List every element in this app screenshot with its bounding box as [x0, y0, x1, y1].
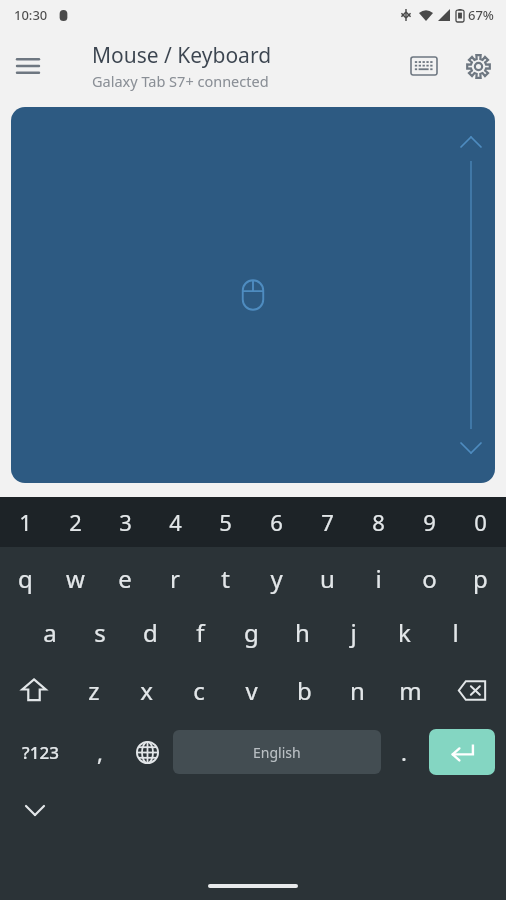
button[interactable]: Change language [122, 727, 173, 777]
button[interactable]: Backspace [437, 665, 506, 715]
button[interactable]: Enter [429, 729, 495, 775]
staticText: l [452, 616, 459, 649]
staticText: 8 [372, 507, 385, 537]
staticText: n [350, 674, 365, 707]
staticText: m [399, 674, 422, 707]
staticText: p [473, 562, 488, 595]
button[interactable]: 0 [455, 497, 506, 547]
button[interactable]: Hide keyboard [20, 795, 50, 825]
staticText: c [193, 674, 205, 707]
staticText: o [422, 562, 437, 595]
staticText: . [401, 737, 407, 767]
button[interactable]: Touchpad [11, 107, 495, 483]
button[interactable]: m [384, 665, 437, 715]
staticText: 0 [474, 507, 487, 537]
button[interactable]: n [331, 665, 384, 715]
staticText: t [221, 562, 230, 595]
staticText: 7 [321, 507, 334, 537]
button[interactable]: o [404, 555, 455, 602]
staticText: e [118, 562, 132, 595]
button[interactable]: c [172, 665, 225, 715]
staticText: 10:30 [14, 6, 48, 24]
staticText: 6 [270, 507, 283, 537]
button[interactable]: j [328, 608, 379, 657]
button[interactable]: g [226, 608, 277, 657]
staticText: d [143, 616, 158, 649]
staticText: English [253, 743, 301, 762]
staticText: k [398, 616, 411, 649]
staticText: y [270, 562, 283, 595]
staticText: 3 [119, 507, 132, 537]
button[interactable]: y [251, 555, 302, 602]
button[interactable]: f [175, 608, 226, 657]
staticText: 5 [219, 507, 232, 537]
button[interactable]: e [100, 555, 150, 602]
button[interactable]: s [75, 608, 125, 657]
button[interactable]: 3 [100, 497, 150, 547]
button[interactable]: a [25, 608, 75, 657]
button[interactable]: , [77, 727, 122, 777]
button[interactable]: Keyboard [398, 40, 450, 92]
staticText: x [140, 674, 153, 707]
button[interactable]: u [302, 555, 353, 602]
staticText: r [170, 562, 180, 595]
staticText: 4 [169, 507, 182, 537]
staticText: 9 [423, 507, 436, 537]
button[interactable]: 6 [251, 497, 302, 547]
button[interactable]: x [120, 665, 172, 715]
button[interactable]: r [150, 555, 200, 602]
staticText: f [196, 616, 205, 649]
button[interactable]: . [381, 727, 426, 777]
button[interactable]: v [225, 665, 278, 715]
button[interactable]: Menu [0, 38, 56, 94]
staticText: i [375, 562, 382, 595]
button[interactable]: 7 [302, 497, 353, 547]
button[interactable]: z [68, 665, 120, 715]
button[interactable]: t [200, 555, 251, 602]
button[interactable]: ?123 [4, 727, 77, 777]
button[interactable]: 5 [200, 497, 251, 547]
staticText: s [94, 616, 106, 649]
staticText: a [43, 616, 57, 649]
staticText: j [350, 616, 357, 649]
staticText: , [97, 737, 103, 767]
staticText: b [297, 674, 312, 707]
staticText: 2 [69, 507, 82, 537]
button[interactable]: 8 [353, 497, 404, 547]
button[interactable]: 1 [0, 497, 50, 547]
button[interactable]: 2 [50, 497, 100, 547]
button[interactable]: i [353, 555, 404, 602]
staticText: q [18, 562, 33, 595]
button[interactable]: 9 [404, 497, 455, 547]
button[interactable]: d [125, 608, 175, 657]
staticText: u [320, 562, 335, 595]
staticText: 67% [468, 6, 494, 24]
button[interactable]: Shift [0, 665, 68, 715]
staticText: Mouse / Keyboard [92, 41, 272, 70]
button[interactable]: p [455, 555, 506, 602]
staticText: w [66, 562, 85, 595]
staticText: Galaxy Tab S7+ connected [92, 71, 269, 91]
button[interactable]: 4 [150, 497, 200, 547]
staticText: h [295, 616, 310, 649]
button[interactable]: h [277, 608, 328, 657]
button[interactable]: b [278, 665, 331, 715]
button[interactable]: Settings [450, 38, 506, 94]
button[interactable]: English [173, 730, 381, 774]
staticText: ?123 [22, 741, 59, 764]
button[interactable]: w [50, 555, 100, 602]
button[interactable]: l [430, 608, 481, 657]
staticText: g [244, 616, 259, 649]
button[interactable]: k [379, 608, 430, 657]
staticText: v [245, 674, 258, 707]
button[interactable]: q [0, 555, 50, 602]
staticText: 1 [19, 507, 32, 537]
staticText: z [88, 674, 100, 707]
